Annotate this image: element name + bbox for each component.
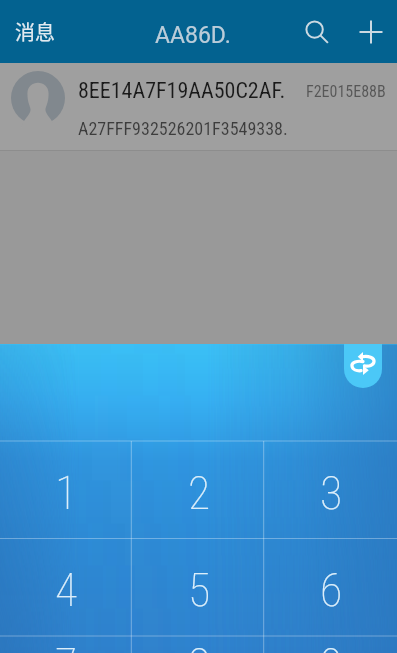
staticText: 7 bbox=[55, 638, 78, 653]
staticText: 5 bbox=[188, 563, 211, 617]
staticText: 8 bbox=[188, 638, 211, 653]
button[interactable]: 5 bbox=[133, 538, 265, 635]
staticText: A27FFF932526201F3549338. bbox=[78, 118, 288, 139]
staticText: 8EE14A7F19AA50C2AF. bbox=[78, 78, 286, 104]
button[interactable]: 4 bbox=[0, 538, 133, 635]
staticText: 2 bbox=[188, 466, 211, 520]
button[interactable]: 8EE14A7F19AA50C2AF. bbox=[0, 63, 397, 150]
button[interactable]: 2 bbox=[133, 441, 265, 538]
staticText: 3 bbox=[320, 466, 343, 520]
button[interactable]: 6 bbox=[265, 538, 397, 635]
button[interactable]: 8 bbox=[133, 635, 265, 653]
staticText: 9 bbox=[320, 638, 343, 653]
staticText: 1 bbox=[55, 466, 78, 520]
button[interactable]: 3 bbox=[265, 441, 397, 538]
staticText: 消息 bbox=[15, 17, 55, 46]
button[interactable]: 9 bbox=[265, 635, 397, 653]
button[interactable]: Swap bbox=[344, 344, 382, 388]
button[interactable]: 7 bbox=[0, 635, 133, 653]
button[interactable]: 消息 bbox=[0, 9, 69, 54]
button[interactable]: 1 bbox=[0, 441, 133, 538]
staticText: 6 bbox=[320, 563, 343, 617]
button[interactable]: Search bbox=[293, 8, 341, 56]
staticText: 4 bbox=[55, 563, 78, 617]
staticText: F2E015E88B bbox=[306, 82, 386, 101]
button[interactable]: Add bbox=[347, 8, 395, 56]
staticText: AA86D. bbox=[155, 22, 231, 49]
